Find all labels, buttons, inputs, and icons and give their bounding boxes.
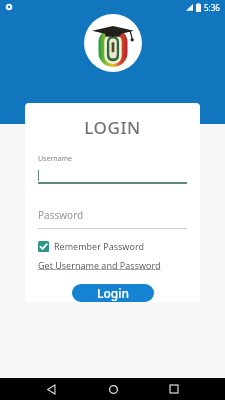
staticText: Login xyxy=(97,285,129,301)
staticText: Remember Password xyxy=(54,240,144,252)
button[interactable]: Recent apps xyxy=(163,378,185,400)
button[interactable]: Home xyxy=(102,378,124,400)
staticText: LOGIN xyxy=(38,116,187,139)
button[interactable]: Back xyxy=(40,378,62,400)
staticText: 5:36 xyxy=(204,2,220,13)
button[interactable]: Login xyxy=(72,284,154,302)
staticText: Username xyxy=(38,154,73,164)
button[interactable]: Get Username and Password xyxy=(38,259,161,271)
button[interactable]: Username xyxy=(38,154,187,184)
button[interactable]: Password xyxy=(38,208,187,229)
button[interactable]: Remember Password xyxy=(38,240,144,252)
staticText: Password xyxy=(38,208,84,222)
